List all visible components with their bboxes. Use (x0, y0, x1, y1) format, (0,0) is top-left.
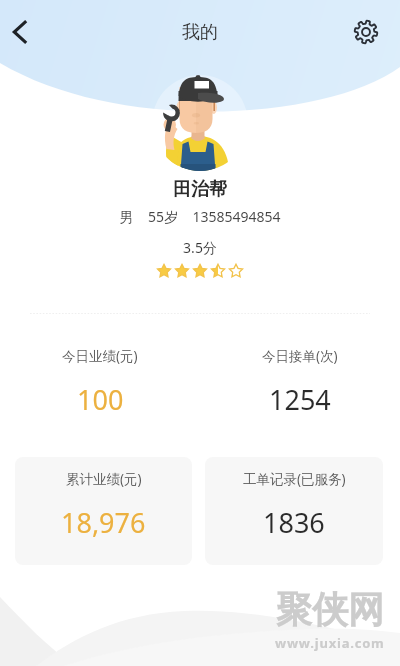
staticText: 聚侠网 (276, 587, 384, 632)
staticText: 18,976 (61, 504, 146, 541)
button[interactable]: Settings (345, 11, 387, 53)
staticText: 100 (77, 381, 124, 418)
button[interactable]: 今日业绩(元) (0, 347, 200, 418)
button[interactable]: 工单记录(已服务) (205, 457, 383, 565)
staticText: 工单记录(已服务) (243, 470, 346, 488)
staticText: 我的 (182, 21, 218, 44)
staticText: 累计业绩(元) (66, 470, 142, 488)
staticText: 今日业绩(元) (62, 347, 138, 365)
staticText: 田治帮 (0, 178, 400, 201)
staticText: 今日接单(次) (262, 347, 338, 365)
staticText: 男 55岁 13585494854 (0, 207, 400, 226)
staticText: 1254 (269, 381, 331, 418)
button[interactable]: 今日接单(次) (200, 347, 400, 418)
staticText: 1836 (263, 504, 325, 541)
staticText: 3.5分 (0, 238, 400, 257)
button[interactable]: 累计业绩(元) (15, 457, 192, 565)
button[interactable]: Back (0, 11, 42, 53)
staticText: www.juxia.com (275, 634, 385, 652)
